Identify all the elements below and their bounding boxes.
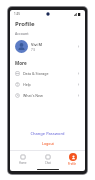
button[interactable]: Vivi M: [15, 38, 80, 55]
staticText: Logout: [42, 141, 54, 146]
staticText: Change Password: [30, 131, 65, 136]
button[interactable]: Help: [15, 79, 80, 90]
button[interactable]: Chat: [35, 151, 60, 167]
staticText: Home: [19, 161, 27, 165]
button[interactable]: Change Password: [15, 129, 80, 138]
button[interactable]: Profile: [60, 151, 85, 167]
staticText: Help: [23, 82, 77, 87]
staticText: Data & Storage: [23, 71, 77, 76]
staticText: 1:25: [14, 12, 20, 16]
staticText: Vivi M: [31, 42, 43, 47]
staticText: What's New: [23, 93, 77, 98]
staticText: More: [15, 60, 27, 66]
button[interactable]: Logout: [15, 139, 80, 148]
staticText: Profile: [68, 162, 77, 166]
staticText: Account: [15, 31, 29, 36]
staticText: 7.5: [31, 48, 36, 52]
button[interactable]: Data & Storage: [15, 68, 80, 79]
button[interactable]: What's New: [15, 90, 80, 101]
staticText: Profile: [15, 20, 35, 28]
button[interactable]: Home: [10, 151, 35, 167]
staticText: Chat: [45, 161, 51, 165]
